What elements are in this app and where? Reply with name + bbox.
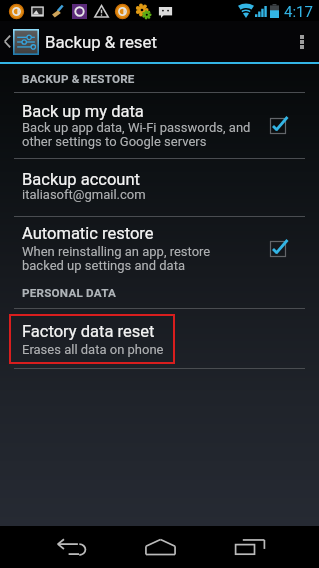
staticText: Backup & reset [45,32,157,52]
staticText: 4:17 [284,3,313,21]
staticText: italiasoft@gmail.com [22,187,146,202]
staticText: BACKUP & RESTORE [22,72,135,86]
button[interactable]: Automatic restore [0,217,319,281]
button[interactable]: Home [130,526,190,568]
staticText: When reinstalling an app, restore backed… [22,244,211,273]
button[interactable]: Backup account [0,159,319,216]
staticText: Automatic restore [22,224,154,243]
staticText: Back up my data [22,102,144,121]
button[interactable]: More options [285,21,319,62]
button[interactable]: Back [41,526,101,568]
staticText: Backup account [22,170,140,189]
button[interactable]: Navigate up [0,21,319,62]
staticText: Erases all data on phone [22,342,164,357]
button[interactable]: Recent apps [220,526,280,568]
staticText: PERSONAL DATA [22,286,116,300]
staticText: Factory data reset [22,322,155,341]
button[interactable]: Factory data reset [0,309,319,368]
button[interactable]: Back up my data [0,93,319,158]
staticText: Back up app data, Wi-Fi passwords, and o… [22,120,251,149]
